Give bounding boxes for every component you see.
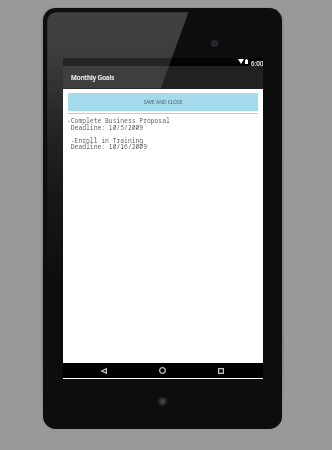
staticText: Monthly Goals bbox=[71, 73, 115, 82]
staticText: -Enroll in Training bbox=[67, 136, 144, 145]
staticText: Deadline: 10/16/2009 bbox=[67, 142, 147, 151]
staticText: Deadline: 10/5/2009 bbox=[67, 123, 144, 132]
staticText: 6:00 bbox=[251, 59, 264, 67]
button[interactable]: Recent apps bbox=[199, 363, 243, 378]
staticText: -Complete Business Proposal bbox=[67, 116, 170, 125]
staticText: SAVE AND CLOSE bbox=[143, 99, 183, 106]
button[interactable]: Home bbox=[140, 363, 184, 378]
button[interactable]: Back bbox=[82, 363, 126, 378]
button[interactable]: Monthly Goals bbox=[63, 66, 263, 89]
button[interactable]: SAVE AND CLOSE bbox=[68, 93, 258, 111]
